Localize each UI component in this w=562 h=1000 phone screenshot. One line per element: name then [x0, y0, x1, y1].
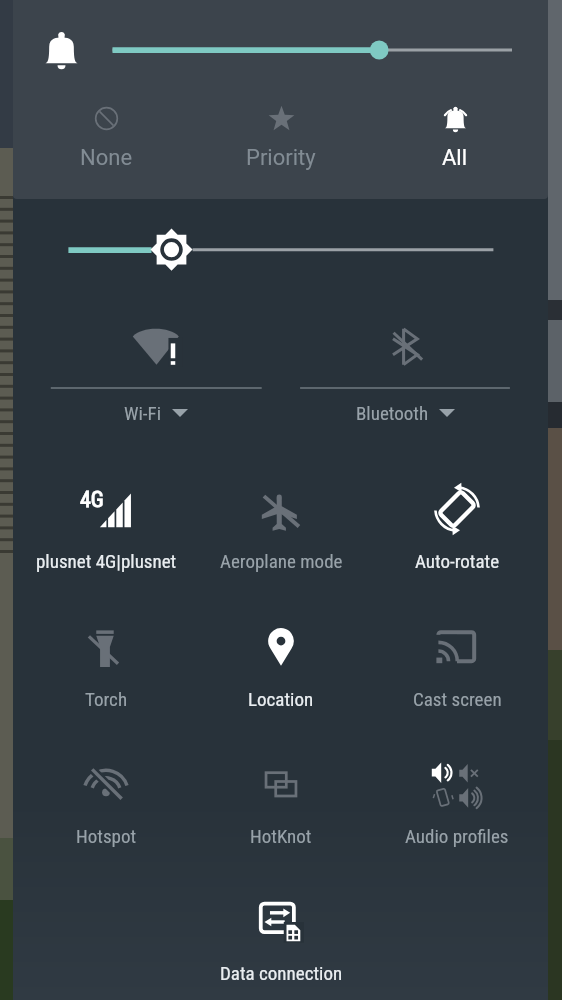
button[interactable]: Wi-Fi: [76, 397, 236, 429]
staticText: Auto-rotate: [415, 550, 500, 572]
button[interactable]: Cast screen: [368, 587, 546, 715]
button[interactable]: Aeroplane mode: [192, 449, 370, 577]
button[interactable]: HotKnot: [192, 725, 370, 853]
staticText: Torch: [85, 688, 128, 710]
staticText: 4G: [80, 487, 104, 513]
staticText: All: [442, 145, 468, 171]
staticText: Hotspot: [76, 825, 137, 847]
button[interactable]: Location: [192, 587, 370, 715]
button[interactable]: All: [366, 96, 544, 176]
button[interactable]: Priority: [192, 96, 370, 176]
staticText: Priority: [246, 145, 316, 171]
button[interactable]: None: [17, 96, 195, 176]
button[interactable]: Torch: [17, 587, 195, 715]
staticText: HotKnot: [250, 825, 312, 847]
button[interactable]: Auto-rotate: [368, 449, 546, 577]
button[interactable]: Hotspot: [17, 725, 195, 853]
staticText: Location: [248, 688, 314, 710]
staticText: Audio profiles: [405, 825, 509, 847]
button[interactable]: plusnet 4G|plusnet: [17, 449, 195, 577]
staticText: Wi-Fi: [124, 402, 162, 424]
staticText: Bluetooth: [356, 402, 429, 424]
button[interactable]: Audio profiles: [368, 725, 546, 853]
button[interactable]: Data connection: [192, 862, 370, 990]
staticText: Cast screen: [413, 688, 502, 710]
staticText: Aeroplane mode: [220, 550, 343, 572]
staticText: plusnet 4G|plusnet: [36, 550, 177, 572]
staticText: Data connection: [220, 962, 343, 984]
button[interactable]: Bluetooth: [325, 397, 485, 429]
staticText: None: [80, 145, 133, 171]
